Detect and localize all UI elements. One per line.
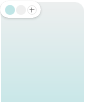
button[interactable]: Teal colour: [0, 1, 41, 18]
button[interactable]: Teal colour: [5, 5, 15, 15]
button[interactable]: Light colour: [16, 5, 26, 15]
button[interactable]: Add colour: [27, 5, 37, 15]
